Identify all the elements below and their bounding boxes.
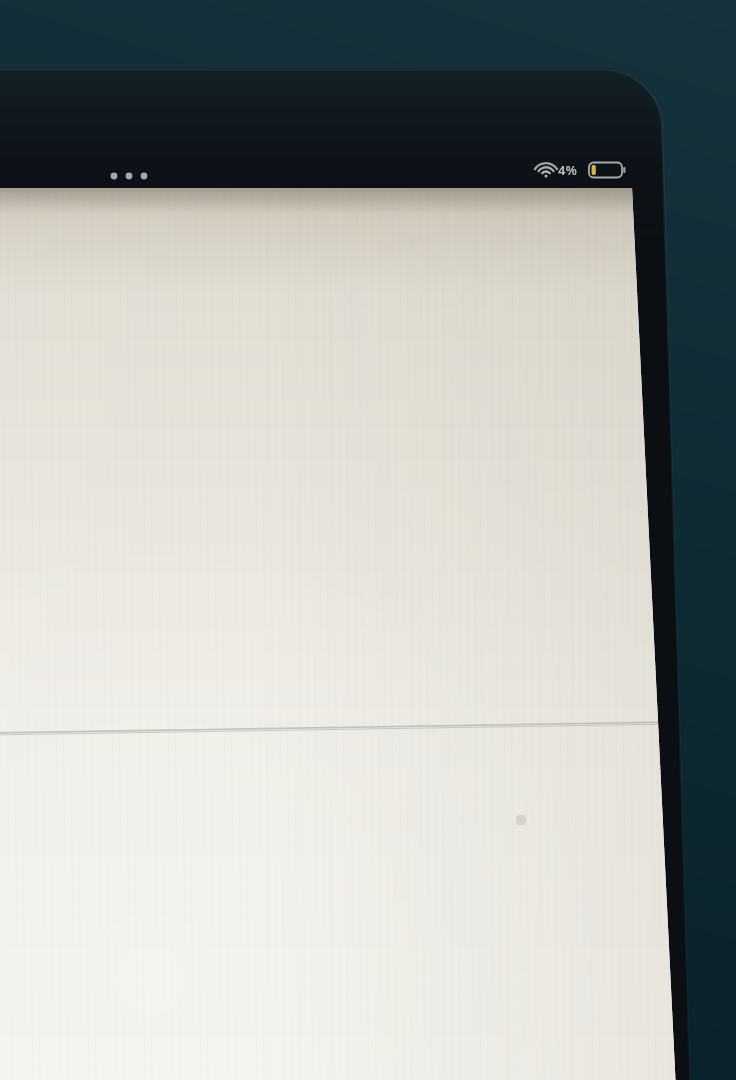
button[interactable]: Wi-Fi connected, battery 4 percent: [532, 157, 632, 183]
button[interactable]: Page indicator: [104, 165, 156, 187]
staticText: 4%: [558, 161, 577, 179]
